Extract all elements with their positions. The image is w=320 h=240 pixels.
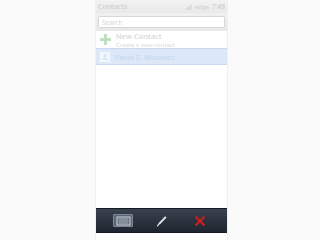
- staticText: Contacts: [98, 2, 128, 12]
- button[interactable]: Close: [190, 213, 210, 229]
- button[interactable]: Add new contact: [95, 31, 228, 48]
- staticText: edge: [195, 3, 210, 11]
- button[interactable]: Search: [98, 16, 225, 28]
- button[interactable]: Keyboard: [113, 214, 133, 227]
- staticText: 7:49: [212, 2, 225, 11]
- button[interactable]: Edit with pen: [152, 213, 172, 229]
- staticText: New Contact: [116, 31, 162, 41]
- staticText: Pavel S. Moravec: [115, 52, 175, 62]
- staticText: Search: [102, 18, 123, 27]
- other: Add new contact: [99, 33, 112, 46]
- staticText: Create a new contact: [116, 41, 175, 48]
- button[interactable]: Pavel S. Moravec: [95, 48, 228, 65]
